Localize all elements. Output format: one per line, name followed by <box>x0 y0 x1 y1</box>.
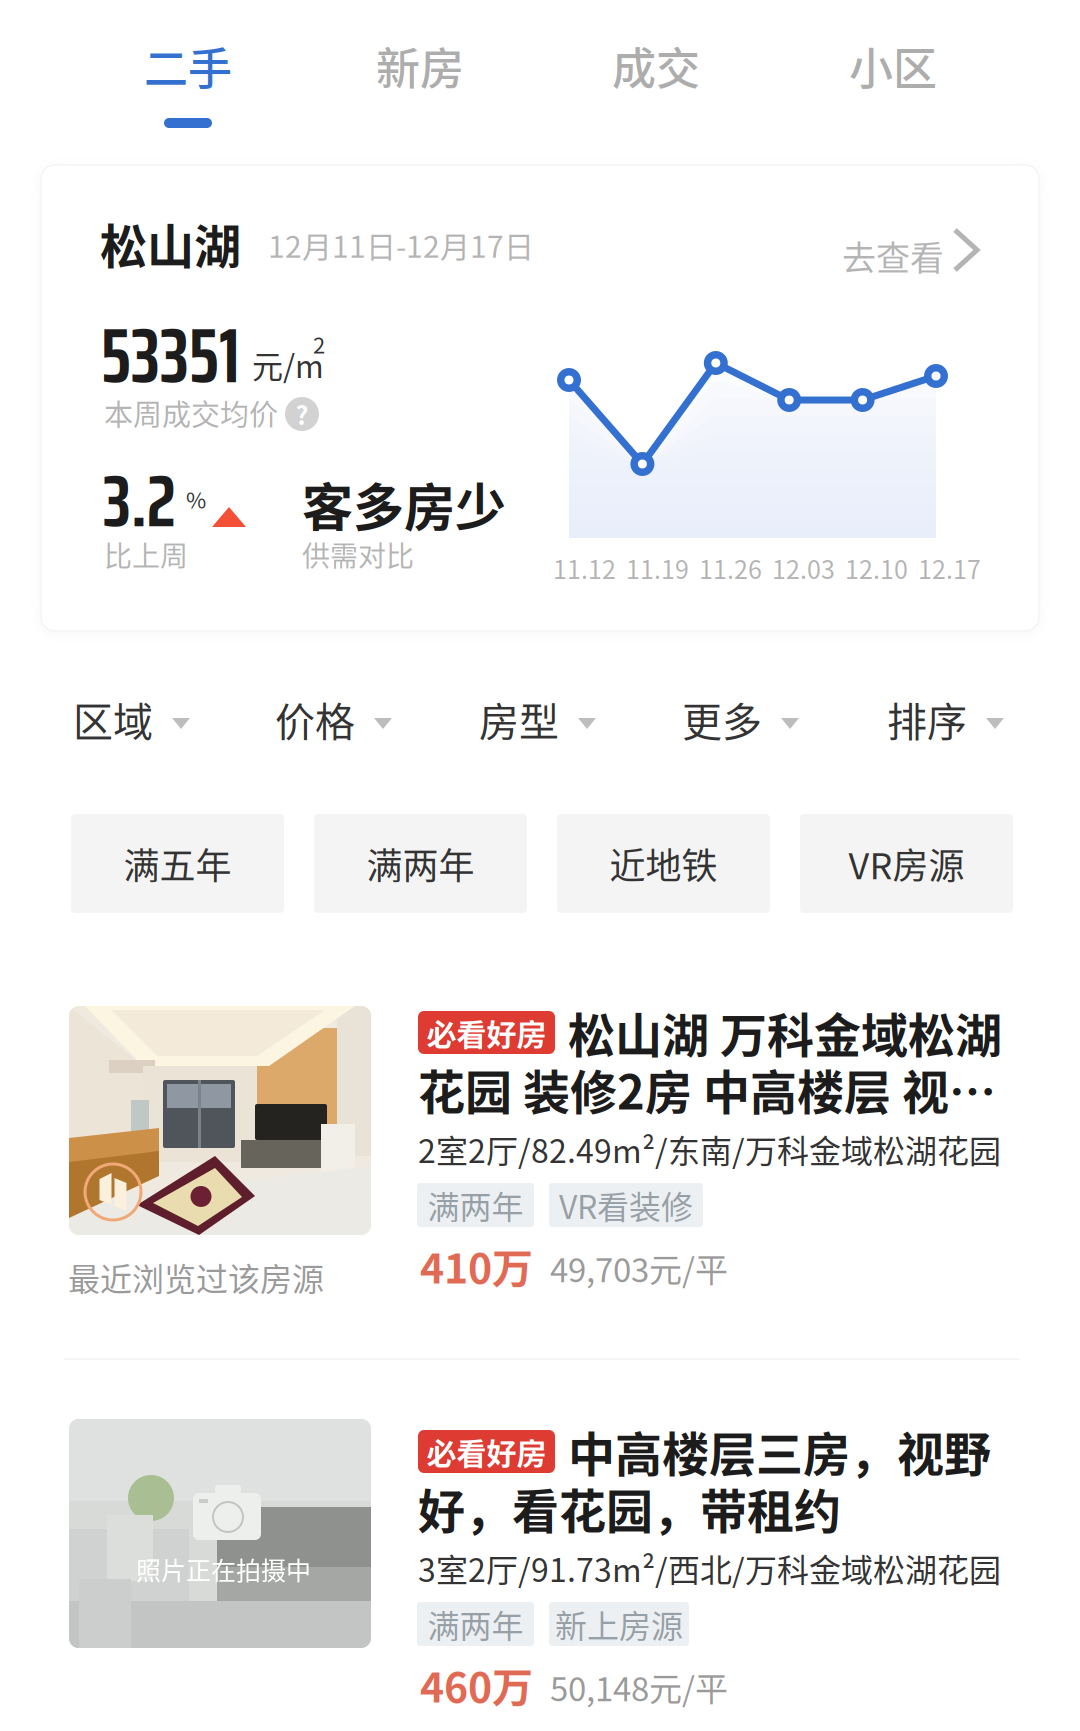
button[interactable]: 满五年 <box>71 814 284 913</box>
staticText: 新房 <box>376 34 464 98</box>
staticText: 排序 <box>887 690 967 748</box>
staticText: 12.17 <box>918 550 981 586</box>
button[interactable]: 区域 <box>52 680 232 770</box>
staticText: 松山湖 万科金域松湖 <box>568 998 1002 1066</box>
staticText: 照片正在拍摄中 <box>136 1551 311 1587</box>
staticText: ? <box>295 396 308 432</box>
staticText: 成交 <box>612 34 700 98</box>
staticText: 12月11日-12月17日 <box>268 223 534 266</box>
staticText: 本周成交均价 <box>104 392 278 434</box>
staticText: 比上周 <box>104 534 188 574</box>
staticText: 满两年 <box>427 1601 523 1647</box>
staticText: 价格 <box>275 690 355 748</box>
staticText: 小区 <box>849 34 937 98</box>
staticText: 必看好房 <box>426 1430 546 1473</box>
staticText: 去查看 <box>842 231 944 280</box>
staticText: 50,148元/平 <box>550 1663 728 1711</box>
staticText: 更多 <box>682 690 762 748</box>
button[interactable]: 更多 <box>661 680 841 770</box>
staticText: VR房源 <box>848 837 964 889</box>
staticText: 中高楼层三房，视野 <box>568 1417 991 1485</box>
staticText: 460万 <box>420 1655 533 1714</box>
button[interactable]: 松山湖 <box>41 165 1039 631</box>
staticText: VR看装修 <box>559 1182 693 1228</box>
staticText: 满五年 <box>123 837 231 889</box>
staticText: 新上房源 <box>555 1601 683 1647</box>
staticText: 元/m <box>252 342 324 387</box>
button[interactable]: 新房 <box>302 0 538 148</box>
staticText: 松山湖 <box>100 209 241 277</box>
button[interactable]: 满两年 <box>314 814 527 913</box>
staticText: 11.26 <box>699 550 762 586</box>
staticText: 区域 <box>73 690 153 748</box>
staticText: 2 <box>313 328 325 360</box>
staticText: 房型 <box>479 690 559 748</box>
staticText: 3.2 <box>103 443 176 558</box>
button[interactable]: 最近浏览过该房源 <box>0 1006 1080 1306</box>
staticText: 满两年 <box>366 837 474 889</box>
button[interactable]: 近地铁 <box>557 814 770 913</box>
staticText: % <box>186 483 206 515</box>
button[interactable]: 二手 <box>70 0 306 148</box>
staticText: 二手 <box>144 34 232 98</box>
staticText: 12.03 <box>772 550 835 586</box>
staticText: 3室2厅/91.73m²/西北/万科金域松湖花园 <box>418 1545 1001 1591</box>
staticText: 必看好房 <box>426 1011 546 1054</box>
staticText: 最近浏览过该房源 <box>68 1254 324 1300</box>
staticText: 49,703元/平 <box>550 1244 728 1292</box>
staticText: 11.12 <box>553 550 616 586</box>
button[interactable]: VR房源 <box>800 814 1013 913</box>
staticText: 供需对比 <box>302 534 414 574</box>
staticText: 好，看花园，带租约 <box>418 1474 841 1542</box>
button[interactable]: 小区 <box>775 0 1011 148</box>
staticText: 410万 <box>420 1236 533 1295</box>
staticText: 11.19 <box>626 550 689 586</box>
staticText: 53351 <box>101 296 240 416</box>
button[interactable]: 房型 <box>458 680 638 770</box>
staticText: 客多房少 <box>302 467 506 541</box>
staticText: 花园 装修2房 中高楼层 视… <box>418 1055 996 1123</box>
staticText: 近地铁 <box>609 837 717 889</box>
staticText: 2室2厅/82.49m²/东南/万科金域松湖花园 <box>418 1126 1001 1172</box>
button[interactable]: 照片正在拍摄中 <box>0 1425 1080 1725</box>
staticText: 满两年 <box>427 1182 523 1228</box>
staticText: 12.10 <box>845 550 908 586</box>
button[interactable]: 成交 <box>538 0 774 148</box>
button[interactable]: 排序 <box>866 680 1046 770</box>
button[interactable]: 价格 <box>254 680 434 770</box>
